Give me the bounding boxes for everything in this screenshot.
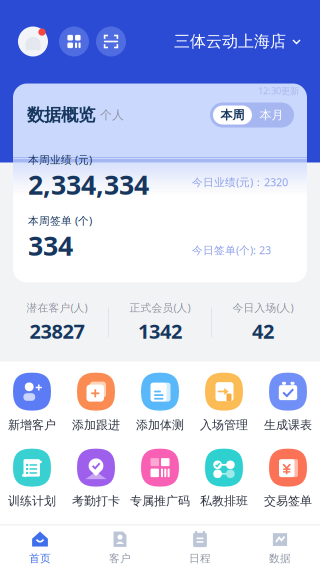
button[interactable]: 添加跟进 bbox=[64, 371, 128, 433]
staticText: 添加跟进 bbox=[72, 418, 120, 432]
staticText: 今日业绩(元)：2320 bbox=[192, 175, 288, 189]
staticText: 42 bbox=[252, 318, 274, 344]
button[interactable]: 日程 bbox=[160, 526, 240, 568]
staticText: 2,334,334 bbox=[28, 167, 149, 202]
button[interactable]: 交易签单 bbox=[256, 447, 320, 509]
staticText: 交易签单 bbox=[264, 494, 312, 508]
staticText: 考勤打卡 bbox=[72, 494, 120, 508]
staticText: 添加体测 bbox=[136, 418, 184, 432]
button[interactable]: 本月 bbox=[252, 105, 291, 124]
button[interactable]: Profile bbox=[18, 26, 48, 56]
button[interactable]: 新增客户 bbox=[0, 371, 64, 433]
button[interactable]: 客户 bbox=[80, 526, 160, 568]
staticText: 专属推广码 bbox=[130, 494, 190, 508]
staticText: 生成课表 bbox=[264, 418, 312, 432]
button[interactable]: 专属推广码 bbox=[128, 447, 192, 509]
button[interactable]: 入场管理 bbox=[192, 371, 256, 433]
staticText: 新增客户 bbox=[8, 418, 56, 432]
staticText: 数据概览 bbox=[27, 104, 95, 126]
staticText: 私教排班 bbox=[200, 494, 248, 508]
staticText: 首页 bbox=[29, 552, 51, 565]
staticText: 本月 bbox=[259, 108, 283, 122]
staticText: 12:30更新 bbox=[258, 84, 299, 97]
button[interactable]: 本周 bbox=[213, 105, 252, 124]
button[interactable]: 生成课表 bbox=[256, 371, 320, 433]
staticText: 今日入场(人) bbox=[232, 300, 293, 315]
button[interactable]: 考勤打卡 bbox=[64, 447, 128, 509]
button[interactable]: 首页 bbox=[0, 526, 80, 568]
staticText: 本周签单 (个) bbox=[28, 213, 92, 228]
staticText: 潜在客户(人) bbox=[26, 300, 87, 315]
staticText: 三体云动上海店 bbox=[174, 32, 286, 51]
staticText: 客户 bbox=[109, 552, 131, 565]
staticText: 入场管理 bbox=[200, 418, 248, 432]
button[interactable]: 私教排班 bbox=[192, 447, 256, 509]
staticText: 334 bbox=[28, 228, 73, 263]
button[interactable]: 添加体测 bbox=[128, 371, 192, 433]
staticText: 个人 bbox=[100, 108, 124, 122]
button[interactable]: 三体云动上海店 bbox=[174, 32, 302, 51]
staticText: 训练计划 bbox=[8, 494, 56, 508]
staticText: 今日签单(个): 23 bbox=[192, 243, 271, 257]
staticText: 23827 bbox=[29, 318, 84, 344]
staticText: 本周业绩 (元) bbox=[28, 152, 92, 167]
staticText: 日程 bbox=[189, 552, 211, 565]
button[interactable]: 数据 bbox=[240, 526, 320, 568]
staticText: 数据 bbox=[269, 552, 291, 565]
button[interactable]: QR code bbox=[59, 26, 89, 56]
staticText: 正式会员(人) bbox=[129, 300, 190, 315]
button[interactable]: Scan bbox=[96, 26, 126, 56]
staticText: 1342 bbox=[138, 318, 182, 344]
button[interactable]: 训练计划 bbox=[0, 447, 64, 509]
staticText: 本周 bbox=[220, 108, 244, 122]
